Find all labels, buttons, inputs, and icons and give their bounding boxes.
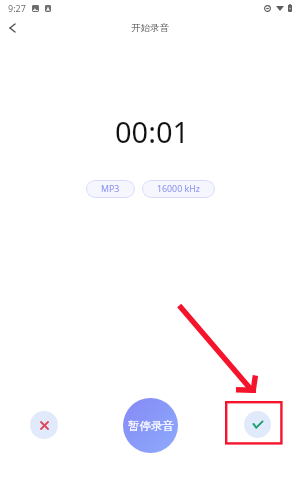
button[interactable]: 16000 kHz [142,180,215,198]
staticText: MP3 [101,183,120,195]
button[interactable]: Cancel recording [30,411,58,439]
button[interactable]: 暂停录音 [123,398,178,453]
staticText: 16000 kHz [157,183,200,195]
button[interactable]: Finish recording [244,411,271,438]
staticText: 暂停录音 [128,419,174,433]
staticText: 9:27 [8,2,26,14]
button[interactable]: Back [0,16,24,40]
staticText: 00:01 [115,112,190,151]
staticText: 开始录音 [131,22,169,34]
button[interactable]: MP3 [86,180,135,198]
